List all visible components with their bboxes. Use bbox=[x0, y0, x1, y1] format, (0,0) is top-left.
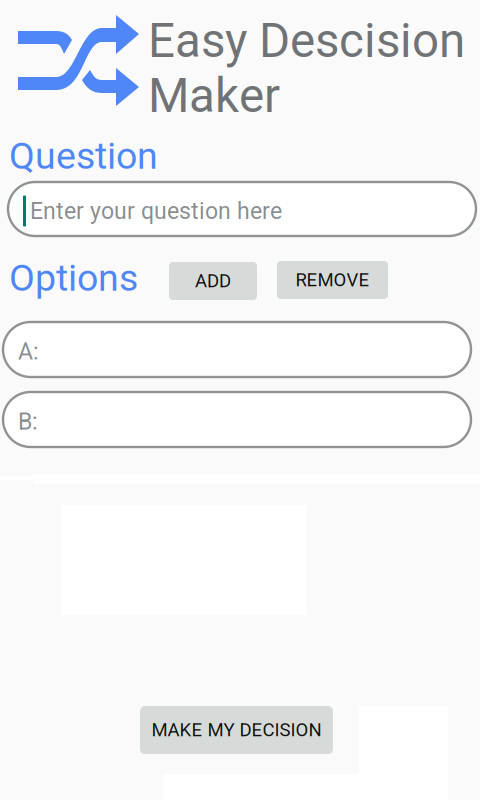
staticText: Easy Descision bbox=[148, 13, 465, 69]
button[interactable]: MAKE MY DECISION bbox=[140, 706, 333, 754]
staticText: A: bbox=[18, 338, 39, 365]
staticText: B: bbox=[18, 408, 38, 435]
staticText: REMOVE bbox=[295, 269, 369, 291]
staticText: MAKE MY DECISION bbox=[151, 719, 321, 741]
button[interactable]: REMOVE bbox=[277, 261, 388, 299]
staticText: Maker bbox=[148, 68, 280, 124]
staticText: Question bbox=[9, 134, 158, 178]
staticText: Options bbox=[9, 256, 138, 300]
staticText: Enter your question here bbox=[30, 197, 282, 224]
button[interactable]: ADD bbox=[169, 262, 257, 300]
staticText: ADD bbox=[195, 270, 231, 292]
